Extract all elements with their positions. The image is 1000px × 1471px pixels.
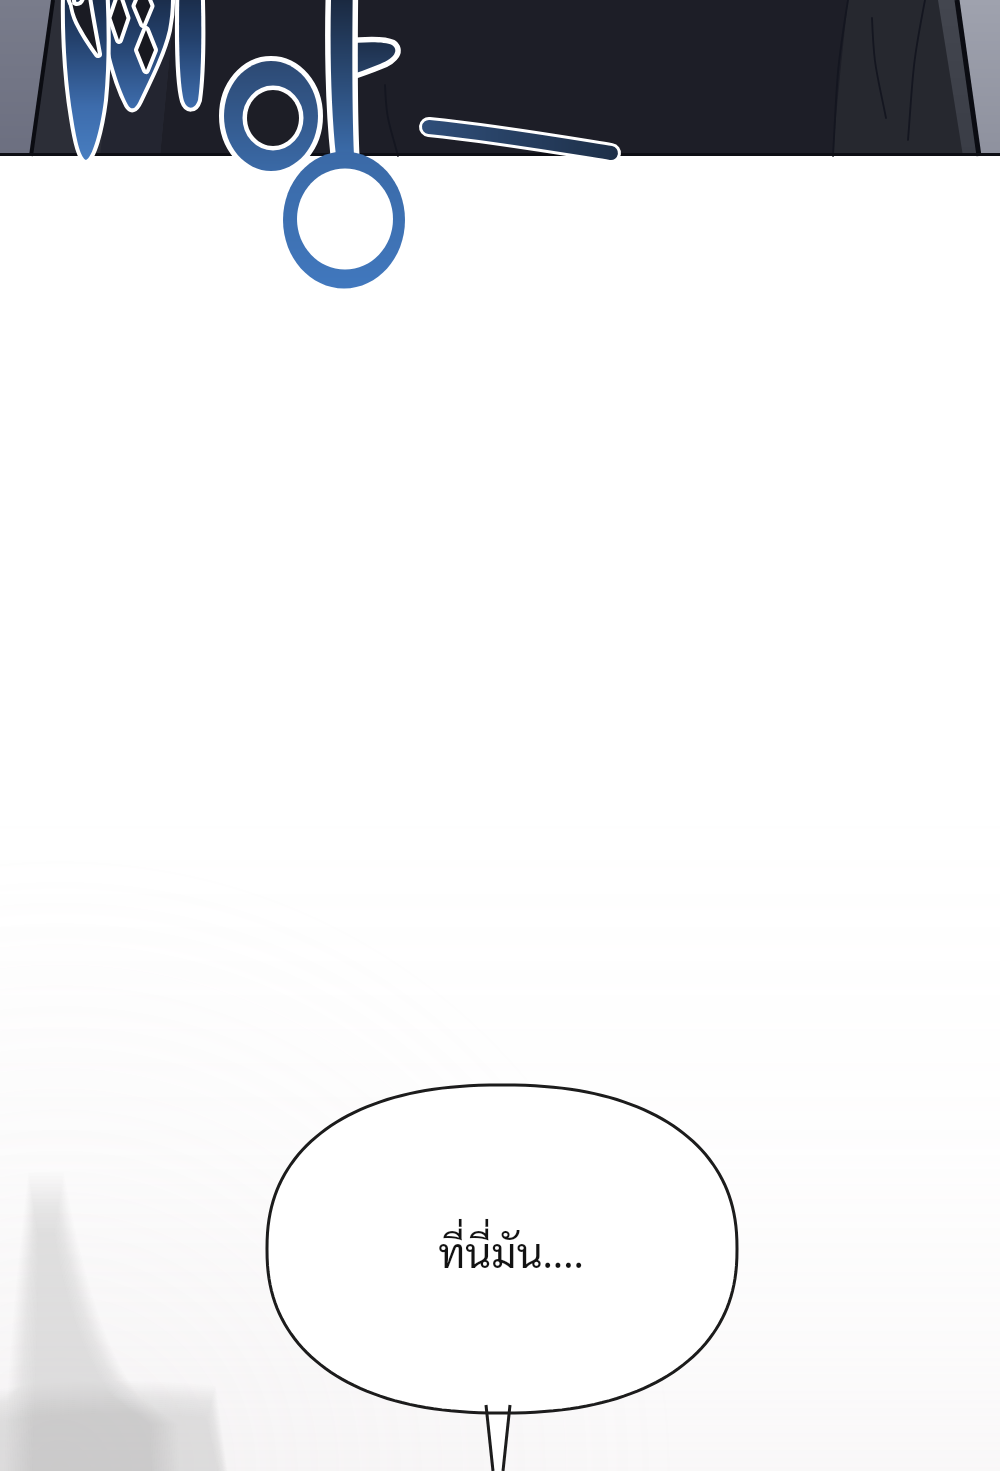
button[interactable]: Comic panel <box>0 0 1000 1471</box>
